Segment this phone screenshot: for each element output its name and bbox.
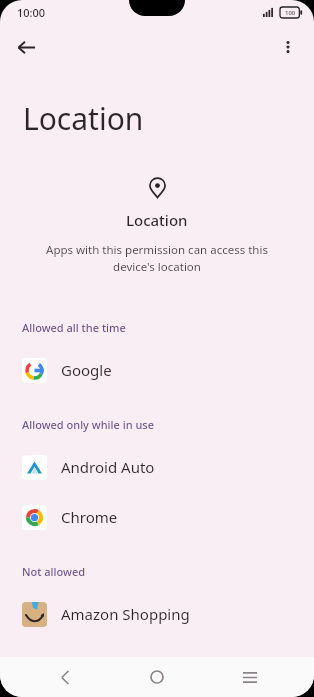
staticText: Amazon Shopping <box>61 604 190 624</box>
staticText: Location <box>23 98 144 139</box>
button[interactable]: Android Auto <box>0 442 314 492</box>
button[interactable]: Amazon Shopping <box>0 589 314 639</box>
staticText: Apps with this permission can access thi… <box>44 242 270 274</box>
button[interactable]: More options <box>268 27 308 67</box>
staticText: Allowed only while in use <box>22 417 154 432</box>
button[interactable]: Google <box>0 345 314 395</box>
staticText: Google <box>61 360 112 380</box>
staticText: Location <box>126 210 188 230</box>
staticText: Android Auto <box>61 457 155 477</box>
staticText: Not allowed <box>22 564 86 579</box>
staticText: 10:00 <box>17 5 46 20</box>
staticText: Chrome <box>61 507 118 527</box>
staticText: 100 <box>285 9 296 17</box>
button[interactable]: Home <box>129 657 185 697</box>
button[interactable]: Chrome <box>0 492 314 542</box>
button[interactable]: Recent apps <box>222 657 278 697</box>
button[interactable]: Back <box>37 657 93 697</box>
button[interactable]: Back <box>6 27 46 67</box>
staticText: Allowed all the time <box>22 320 126 335</box>
